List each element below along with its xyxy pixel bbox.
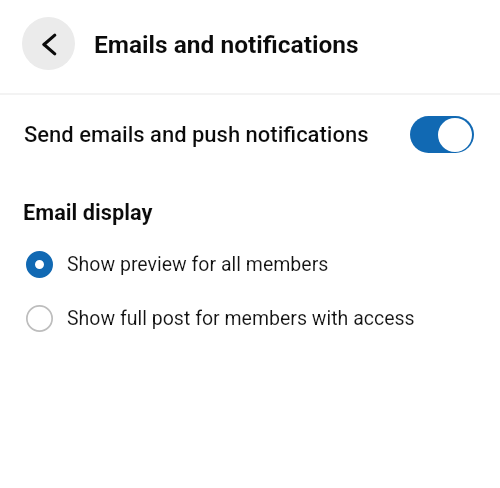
staticText: Show full post for members with access	[67, 307, 415, 330]
button[interactable]: Send emails and push notifications	[0, 99, 500, 170]
button[interactable]: Show full post for members with access	[0, 291, 500, 345]
staticText: Show preview for all members	[67, 253, 329, 276]
button[interactable]: Show preview for all members	[0, 237, 500, 291]
button[interactable]: Back	[22, 17, 75, 70]
staticText: Send emails and push notifications	[24, 122, 410, 148]
staticText: Emails and notifications	[94, 30, 359, 59]
staticText: Email display	[23, 200, 153, 226]
